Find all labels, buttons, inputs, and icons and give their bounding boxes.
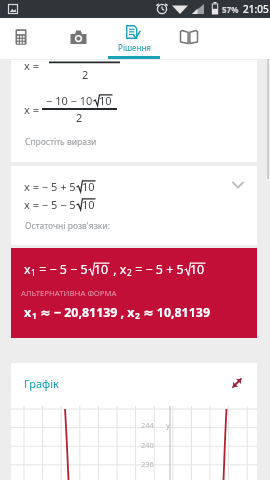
button[interactable]: Glossary (160, 18, 218, 59)
staticText: 236 (141, 459, 154, 469)
staticText: 10 (82, 179, 95, 194)
staticText: Остаточні розв'язки: (25, 220, 110, 232)
staticText: 2 (82, 67, 89, 82)
staticText: = − 5 + 5 (132, 261, 184, 278)
staticText: 10 (94, 261, 109, 278)
staticText: 57% (222, 4, 239, 15)
staticText: 240 (141, 440, 154, 450)
staticText: 1 (32, 310, 37, 321)
staticText: = − 5 − 5 (36, 261, 88, 278)
staticText: Рішення (118, 42, 151, 53)
staticText: АЛЬТЕРНАТИВНА ФОРМА (21, 288, 117, 299)
staticText: Графік (24, 376, 59, 391)
staticText: Спростіть вирази (25, 136, 97, 148)
staticText: 21:05 (243, 2, 269, 16)
staticText: y (166, 420, 170, 430)
button[interactable]: Camera (50, 18, 108, 59)
staticText: x (24, 304, 32, 321)
staticText: x = (24, 58, 39, 73)
staticText: 1 (31, 267, 36, 278)
staticText: , x (110, 261, 127, 278)
staticText: x = − 5 + 5 (24, 179, 76, 194)
staticText: − 10 − 10 (46, 93, 93, 108)
button[interactable]: Fullscreen (227, 373, 247, 393)
staticText: 10 (99, 93, 112, 108)
staticText: 2 (76, 110, 83, 125)
button[interactable]: Calculator (0, 18, 50, 59)
staticText: 2 (127, 267, 132, 278)
staticText: 244 (141, 420, 154, 430)
staticText: ≈ 10,81139 (140, 304, 210, 321)
staticText: 10 (190, 261, 205, 278)
staticText: x (24, 261, 31, 278)
staticText: ≈ − 20,81139 , x (37, 304, 135, 321)
staticText: x = − 5 − 5 (24, 197, 76, 212)
button[interactable]: Expand (229, 176, 247, 194)
staticText: 2 (135, 310, 140, 321)
staticText: x = (24, 102, 39, 117)
staticText: 10 (82, 197, 95, 212)
button[interactable]: Рішення (108, 18, 160, 59)
